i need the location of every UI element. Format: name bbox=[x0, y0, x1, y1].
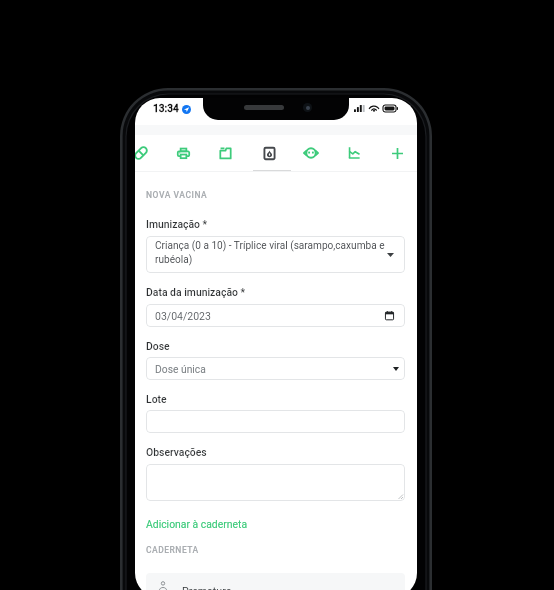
button[interactable] bbox=[146, 464, 405, 501]
staticText: NOVA VACINA bbox=[146, 190, 208, 200]
button[interactable]: Dose única bbox=[146, 357, 405, 380]
button[interactable]: Adicionar à caderneta bbox=[146, 518, 248, 530]
staticText: 13:34 bbox=[153, 103, 179, 115]
button[interactable]: Adicionar bbox=[382, 138, 412, 168]
button[interactable]: Imprimir bbox=[168, 138, 198, 168]
staticText: 03/04/2023 bbox=[155, 310, 211, 322]
staticText: Imunização * bbox=[146, 218, 208, 230]
staticText: Adicionar à caderneta bbox=[146, 518, 248, 530]
button[interactable]: 03/04/2023 bbox=[146, 304, 405, 327]
button[interactable] bbox=[146, 410, 405, 433]
staticText: Criança (0 a 10) - Tríplice viral (saram… bbox=[155, 240, 386, 265]
staticText: Prematuro bbox=[182, 585, 232, 590]
button[interactable]: Prematuro bbox=[146, 573, 405, 590]
button[interactable]: Medicamentos bbox=[135, 138, 156, 168]
button[interactable]: Vacinas bbox=[254, 138, 284, 168]
button[interactable]: Desenvolvimento bbox=[296, 138, 326, 168]
button[interactable]: Criança (0 a 10) - Tríplice viral (saram… bbox=[146, 236, 405, 273]
staticText: Data da imunização * bbox=[146, 286, 246, 298]
button[interactable]: Graficos bbox=[339, 138, 369, 168]
staticText: CADERNETA bbox=[146, 545, 199, 555]
staticText: Dose única bbox=[155, 363, 206, 375]
staticText: Dose bbox=[146, 340, 170, 352]
staticText: Observações bbox=[146, 446, 207, 458]
staticText: Lote bbox=[146, 393, 167, 405]
button[interactable]: Arquivos bbox=[210, 138, 240, 168]
